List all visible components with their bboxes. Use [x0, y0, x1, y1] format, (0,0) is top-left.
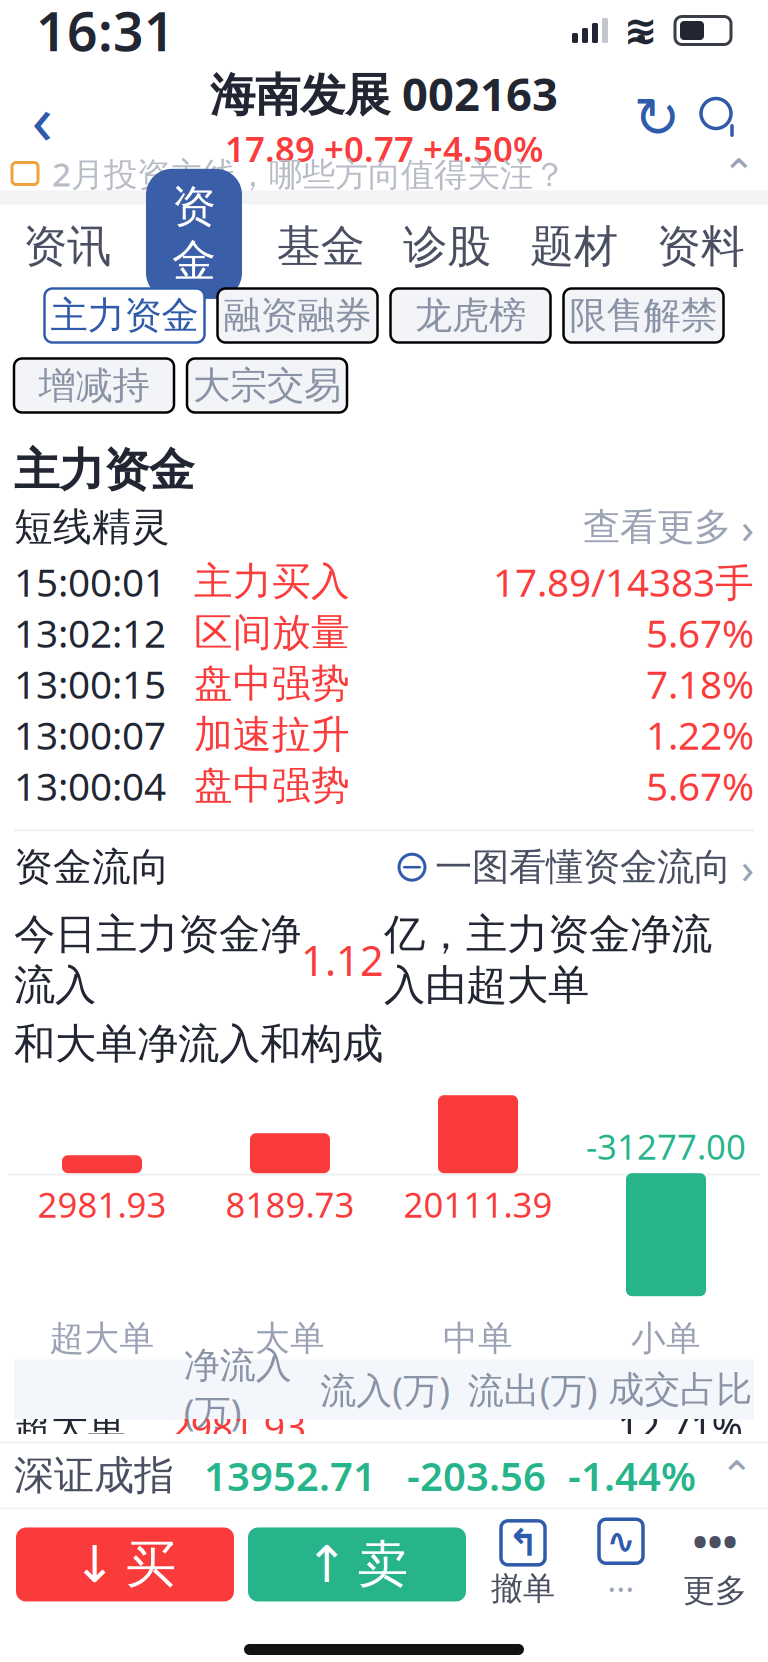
staticText: ↑ [305, 1536, 347, 1593]
staticText: ⌃ [722, 151, 756, 196]
staticText: 资金 [172, 180, 216, 288]
staticText: 卖 [357, 1533, 408, 1596]
staticText: 2月投资主线，哪些方向值得关注？ [52, 151, 566, 196]
button[interactable]: 诊股 [384, 210, 511, 282]
staticText: 13:02:12 [14, 607, 166, 658]
button[interactable]: ↰ [474, 1521, 572, 1608]
staticText: 1.12 [301, 932, 384, 987]
staticText: 融资融券 [223, 293, 371, 338]
button[interactable]: 资金 [131, 169, 257, 324]
button[interactable]: 短线精灵 [0, 498, 768, 556]
staticText: 亿，主力资金净流入由超大单 [384, 909, 712, 1011]
staticText: 限售解禁 [569, 293, 717, 338]
staticText: 题材 [530, 219, 618, 273]
staticText: 13952.71 [204, 1449, 376, 1502]
button[interactable]: 主力资金 [44, 288, 204, 342]
staticText: 超大单 [49, 1317, 154, 1360]
button[interactable]: ↓ [16, 1527, 234, 1601]
staticText: 流入(万) [320, 1366, 450, 1413]
staticText: ▾ [186, 291, 201, 324]
staticText: 13:00:15 [14, 658, 166, 709]
staticText: 5.67% [646, 760, 754, 811]
staticText: 资讯 [23, 219, 111, 273]
button[interactable]: 一图看懂资金流向 [399, 839, 754, 896]
staticText: 17.89 +0.77 +4.50% [225, 126, 543, 172]
staticText: 主力买入 [194, 558, 350, 605]
button[interactable]: 限售解禁 [563, 288, 723, 342]
staticText: 主力资金 [50, 293, 198, 338]
button[interactable]: 资料 [637, 210, 764, 282]
staticText: 5.67% [646, 607, 754, 658]
staticText: 区间放量 [194, 609, 350, 656]
staticText: ≋ [624, 8, 658, 53]
staticText: 超大单 [14, 1404, 125, 1449]
staticText: 1.22% [646, 709, 754, 760]
button[interactable]: 资讯 [4, 210, 131, 282]
staticText: 大宗交易 [193, 363, 341, 408]
staticText: 盘中强势 [194, 762, 350, 809]
button[interactable]: Refresh [626, 86, 688, 148]
staticText: 中单 [443, 1317, 513, 1360]
staticText: -203.56 [407, 1449, 546, 1502]
staticText: 更多 [683, 1571, 747, 1610]
staticText: 7.18% [646, 658, 754, 709]
button[interactable]: ↑ [248, 1527, 466, 1601]
staticText: 和大单净流入和构成 [14, 1019, 383, 1069]
staticText: -1.44% [568, 1449, 696, 1502]
staticText: 13:00:07 [14, 709, 166, 760]
staticText: 主力资金 [14, 442, 194, 498]
staticText: 基金 [277, 219, 365, 273]
staticText: › [741, 499, 754, 556]
staticText: 流出(万) [468, 1366, 598, 1413]
staticText: 13:00:04 [14, 760, 166, 811]
staticText: 26689.93 [465, 1377, 601, 1476]
staticText: 增减持 [38, 363, 149, 408]
button[interactable]: Search [688, 86, 752, 148]
staticText: 一图看懂资金流向 [435, 844, 731, 890]
staticText: › [741, 839, 754, 896]
staticText: 大单 [255, 1317, 325, 1360]
button[interactable]: 增减持 [14, 358, 174, 412]
staticText: 买 [125, 1533, 176, 1596]
button[interactable]: 题材 [511, 210, 637, 282]
staticText: 龙虎榜 [415, 293, 526, 338]
staticText: ‹ [31, 71, 52, 164]
staticText: 16:31 [36, 0, 175, 66]
button[interactable]: 大宗交易 [187, 358, 347, 412]
button[interactable]: Back [4, 86, 80, 148]
button[interactable]: 深证成指 [0, 1443, 768, 1507]
staticText: 8189.73 [225, 1181, 354, 1227]
staticText: 今日主力资金净流入 [14, 909, 301, 1011]
staticText: 15:00:01 [14, 556, 166, 607]
button[interactable]: 2月投资主线，哪些方向值得关注？ [0, 156, 768, 190]
staticText: 深证成指 [14, 1451, 174, 1500]
staticText: 盘中强势 [194, 660, 350, 707]
staticText: ••• [692, 1514, 737, 1567]
staticText: 20111.39 [403, 1181, 552, 1227]
staticText: 撤单 [491, 1569, 555, 1608]
staticText: ↓ [73, 1536, 115, 1593]
staticText: ∿ [606, 1522, 635, 1561]
staticText: ↻ [633, 86, 680, 149]
staticText: 加速拉升 [194, 711, 350, 758]
button[interactable]: ••• [670, 1519, 760, 1610]
staticText: 资金流向 [14, 843, 170, 891]
button[interactable]: 龙虎榜 [390, 288, 550, 342]
button[interactable]: 融资融券 [217, 288, 377, 342]
staticText: ↰ [507, 1522, 538, 1564]
staticText: ··· [607, 1567, 634, 1610]
staticText: ⌃ [720, 1453, 754, 1498]
staticText: -31277.00 [586, 1123, 746, 1169]
staticText: 海南发展 002163 [210, 63, 558, 124]
staticText: 2981.93 [37, 1181, 166, 1227]
staticText: 29671.86 [317, 1377, 453, 1476]
staticText: 诊股 [403, 219, 491, 273]
staticText: 成交占比 [608, 1367, 752, 1412]
button[interactable]: 基金 [257, 210, 384, 282]
staticText: 查看更多 [583, 504, 731, 550]
staticText: 17.89/14383手 [493, 556, 754, 607]
button[interactable]: Chart [572, 1519, 670, 1610]
staticText: 12.71% [618, 1402, 743, 1451]
staticText: 短线精灵 [14, 503, 170, 551]
staticText: 2981.93 [170, 1402, 306, 1451]
